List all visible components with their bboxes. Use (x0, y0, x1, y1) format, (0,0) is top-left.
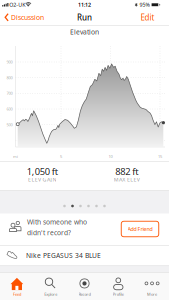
staticText: Explore (44, 291, 57, 297)
staticText: 1,050 ft (27, 165, 58, 178)
staticText: 800 (6, 75, 12, 80)
staticText: 15 (158, 154, 162, 159)
staticText: 11:12 (78, 1, 91, 8)
staticText: Nike PEGASUS 34 BLUE (26, 251, 101, 260)
button[interactable]: Record (68, 274, 101, 300)
staticText: Feed (13, 291, 21, 297)
staticText: More (147, 291, 157, 297)
staticText: With someone who (27, 217, 87, 226)
button[interactable]: Add Friend (121, 221, 159, 237)
staticText: ELEV GAIN (28, 176, 56, 183)
button[interactable]: Discussion (4, 9, 60, 25)
staticText: 95% (139, 1, 149, 8)
button[interactable]: Explore (34, 274, 68, 300)
staticText: 700 (6, 91, 12, 96)
staticText: 900 (6, 59, 12, 65)
button[interactable]: Nike PEGASUS 34 BLUE (0, 245, 169, 266)
staticText: didn't record? (27, 228, 71, 237)
staticText: Edit (140, 12, 154, 23)
button[interactable]: Edit (136, 9, 158, 25)
staticText: mi (13, 154, 18, 159)
button[interactable]: Profile (101, 274, 135, 300)
staticText: MAX ELEV (114, 176, 140, 183)
staticText: 10 (108, 154, 112, 159)
staticText: 500 (6, 122, 12, 127)
button[interactable]: More (135, 274, 169, 300)
staticText: Add Friend (127, 225, 152, 233)
staticText: 600 (6, 106, 12, 112)
staticText: Run (77, 12, 92, 23)
staticText: 882 ft (115, 165, 138, 178)
staticText: Record (78, 291, 90, 297)
staticText: Discussion (11, 13, 44, 22)
staticText: 5 (60, 154, 62, 159)
staticText: Profile (113, 291, 124, 297)
staticText: Elevation (70, 28, 99, 36)
staticText: O2-UK (9, 1, 25, 8)
button[interactable]: Feed (0, 274, 34, 300)
